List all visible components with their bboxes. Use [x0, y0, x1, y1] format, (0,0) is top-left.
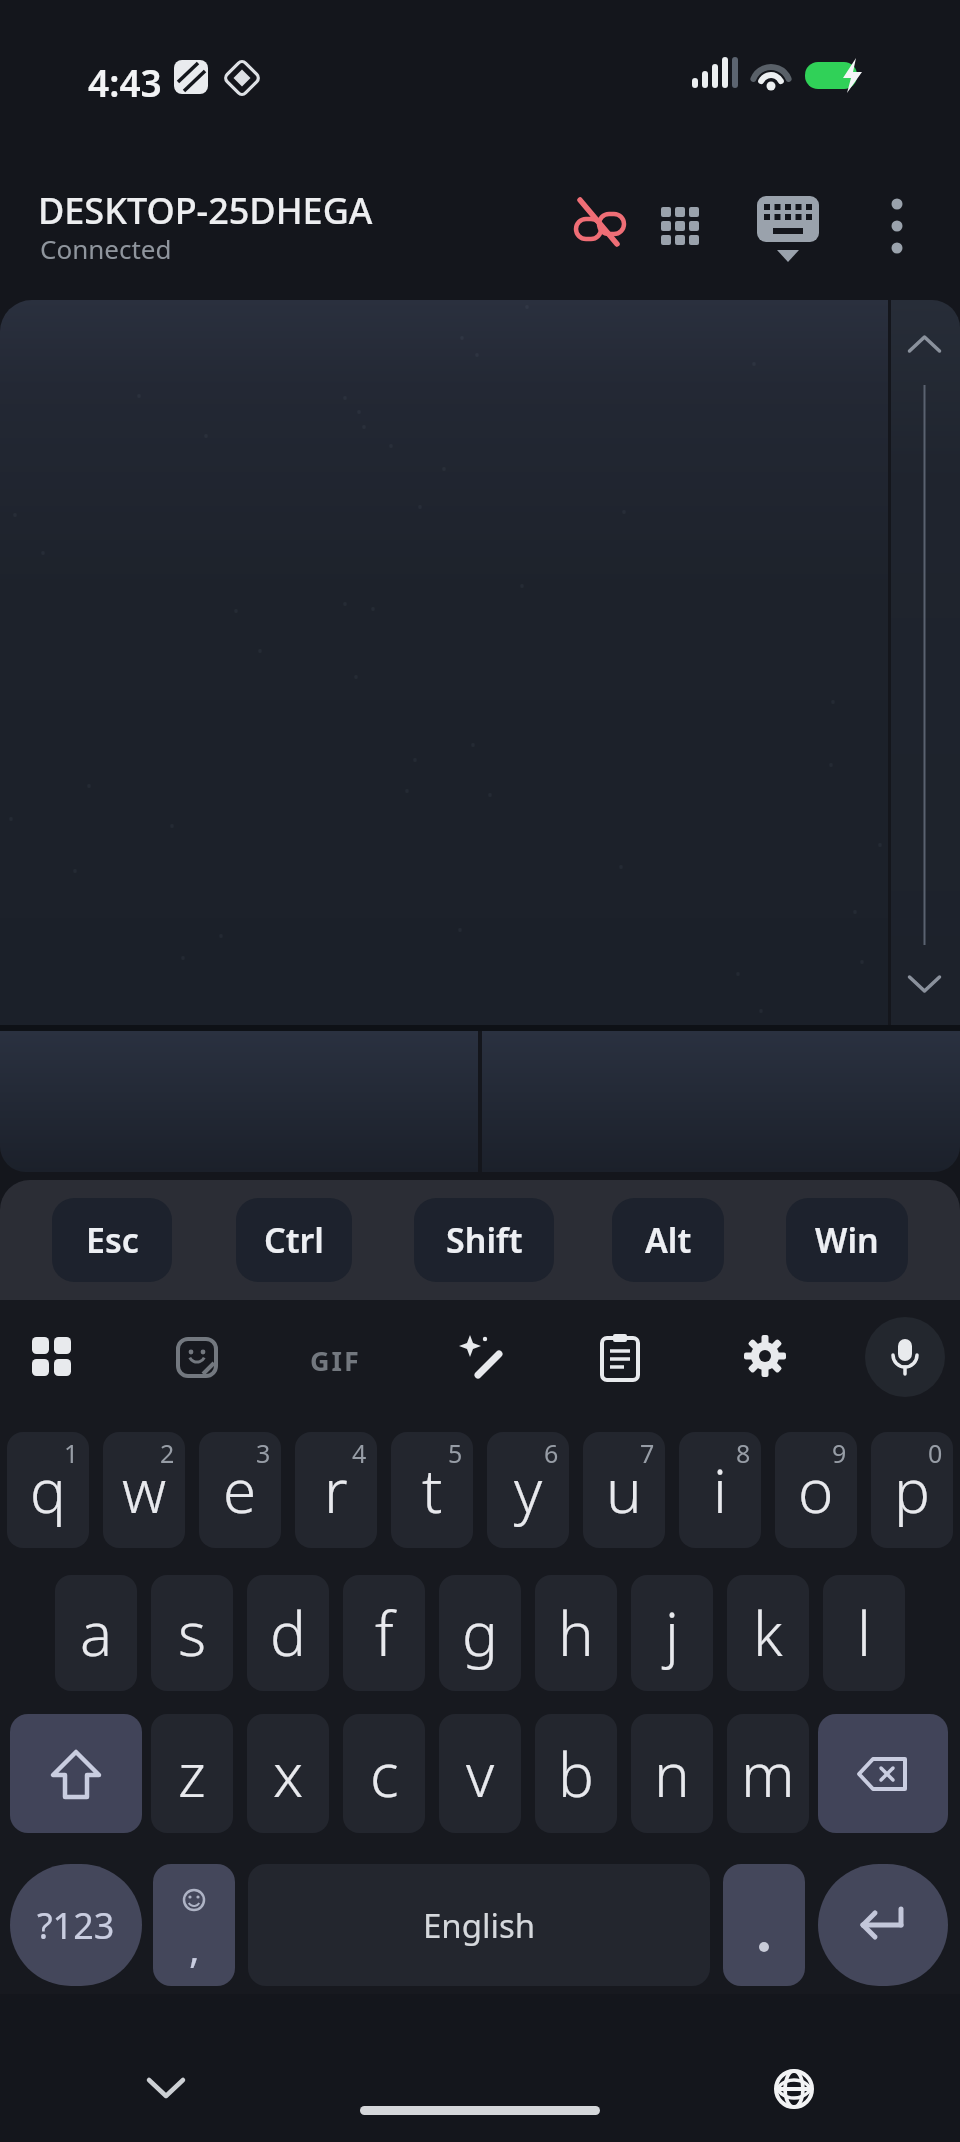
button[interactable]: p — [871, 1432, 953, 1548]
staticText: u — [606, 1449, 642, 1531]
staticText: v — [466, 1733, 495, 1815]
button[interactable]: j — [631, 1575, 713, 1691]
button[interactable] — [10, 1714, 142, 1833]
staticText: m — [741, 1733, 795, 1815]
staticText: 2 — [160, 1436, 175, 1470]
staticText: 4 — [352, 1436, 367, 1470]
button[interactable]: v — [439, 1714, 521, 1833]
staticText: f — [375, 1592, 394, 1674]
button[interactable] — [175, 1335, 219, 1379]
button[interactable]: x — [247, 1714, 329, 1833]
button[interactable]: Ctrl — [236, 1198, 352, 1282]
button[interactable]: n — [631, 1714, 713, 1833]
button[interactable] — [818, 1864, 948, 1986]
button[interactable]: Shift — [414, 1198, 554, 1282]
staticText: n — [654, 1733, 690, 1815]
button[interactable]: a — [55, 1575, 137, 1691]
button[interactable]: i — [679, 1432, 761, 1548]
staticText: p — [894, 1449, 930, 1531]
staticText: DESKTOP-25DHEGA — [38, 186, 373, 235]
staticText: a — [80, 1592, 113, 1674]
staticText: 5 — [448, 1436, 463, 1470]
button[interactable] — [756, 192, 820, 268]
button[interactable]: u — [583, 1432, 665, 1548]
button[interactable]: Alt — [612, 1198, 724, 1282]
button[interactable]: q — [7, 1432, 89, 1548]
staticText: Esc — [86, 1217, 139, 1263]
staticText: Connected — [40, 231, 172, 266]
staticText: 9 — [832, 1436, 847, 1470]
button[interactable]: g — [439, 1575, 521, 1691]
staticText: ?123 — [37, 1901, 115, 1950]
button[interactable] — [865, 1317, 945, 1397]
staticText: e — [223, 1449, 257, 1531]
staticText: x — [273, 1733, 304, 1815]
button[interactable]: Win — [786, 1198, 908, 1282]
staticText: s — [178, 1592, 207, 1674]
button[interactable] — [568, 194, 632, 258]
button[interactable]: f — [343, 1575, 425, 1691]
button[interactable] — [742, 1333, 788, 1379]
button[interactable] — [758, 2053, 830, 2125]
staticText: 1 — [64, 1436, 79, 1470]
staticText: l — [857, 1592, 871, 1674]
staticText: , — [189, 1920, 200, 1974]
button[interactable] — [723, 1864, 805, 1986]
button[interactable]: h — [535, 1575, 617, 1691]
button[interactable]: y — [487, 1432, 569, 1548]
staticText: Shift — [446, 1217, 523, 1263]
button[interactable]: s — [151, 1575, 233, 1691]
button[interactable]: , — [153, 1864, 235, 1986]
staticText: w — [122, 1449, 167, 1531]
button[interactable]: r — [295, 1432, 377, 1548]
button[interactable] — [130, 2052, 202, 2124]
button[interactable] — [0, 300, 888, 1027]
button[interactable]: Esc — [52, 1198, 172, 1282]
staticText: o — [798, 1449, 834, 1531]
staticText: j — [665, 1592, 679, 1674]
button[interactable]: e — [199, 1432, 281, 1548]
staticText: 6 — [544, 1436, 559, 1470]
staticText: Alt — [645, 1217, 692, 1263]
staticText: b — [558, 1733, 594, 1815]
staticText: 3 — [256, 1436, 271, 1470]
staticText: h — [558, 1592, 594, 1674]
button[interactable]: b — [535, 1714, 617, 1833]
button[interactable] — [482, 1031, 960, 1172]
staticText: 0 — [928, 1436, 943, 1470]
button[interactable] — [818, 1714, 948, 1833]
staticText: 4:43 — [88, 57, 162, 107]
staticText: r — [324, 1449, 348, 1531]
staticText: q — [30, 1449, 66, 1531]
button[interactable] — [458, 1333, 506, 1381]
button[interactable]: d — [247, 1575, 329, 1691]
button[interactable]: o — [775, 1432, 857, 1548]
staticText: i — [713, 1449, 727, 1531]
button[interactable] — [0, 1031, 478, 1172]
staticText: g — [462, 1592, 498, 1674]
button[interactable]: z — [151, 1714, 233, 1833]
staticText: 8 — [736, 1436, 751, 1470]
staticText: GIF — [310, 1342, 361, 1379]
button[interactable]: c — [343, 1714, 425, 1833]
button[interactable]: ?123 — [10, 1864, 142, 1986]
button[interactable] — [872, 194, 922, 258]
button[interactable]: English — [248, 1864, 710, 1986]
button[interactable] — [30, 1335, 74, 1379]
button[interactable]: k — [727, 1575, 809, 1691]
button[interactable] — [652, 198, 708, 254]
staticText: English — [423, 1903, 536, 1948]
button[interactable] — [598, 1333, 642, 1381]
button[interactable]: t — [391, 1432, 473, 1548]
button[interactable] — [891, 300, 960, 1027]
staticText: k — [753, 1592, 783, 1674]
staticText: 7 — [640, 1436, 655, 1470]
button[interactable]: m — [727, 1714, 809, 1833]
staticText: Win — [815, 1217, 879, 1263]
staticText: c — [370, 1733, 399, 1815]
staticText: t — [422, 1449, 443, 1531]
button[interactable]: w — [103, 1432, 185, 1548]
staticText: z — [178, 1733, 206, 1815]
button[interactable]: l — [823, 1575, 905, 1691]
staticText: y — [514, 1449, 543, 1531]
